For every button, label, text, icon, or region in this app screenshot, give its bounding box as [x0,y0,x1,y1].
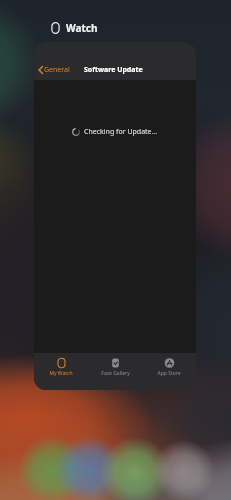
staticText: App Store [157,370,181,377]
staticText: Watch [66,21,98,35]
other: My Watch [56,358,67,368]
button[interactable]: Face Gallery [88,353,142,377]
button[interactable]: General [34,61,74,80]
staticText: Software Update [84,65,143,75]
other: Face Gallery [110,358,121,368]
staticText: Face Gallery [101,370,130,377]
staticText: General [44,65,70,75]
button[interactable]: My Watch [34,353,88,377]
staticText: Checking for Update… [84,127,158,137]
other: App Store [164,358,175,368]
button[interactable]: App Store [142,353,196,377]
staticText: My Watch [49,370,73,377]
